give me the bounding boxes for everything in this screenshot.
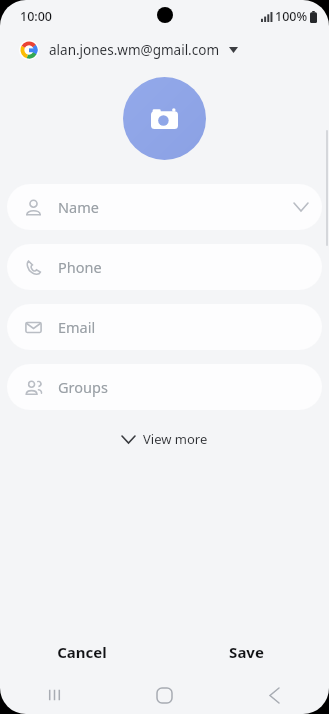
- button[interactable]: Back: [219, 676, 329, 714]
- button[interactable]: Add contact photo: [123, 77, 206, 160]
- button[interactable]: Name: [7, 184, 322, 230]
- staticText: Name: [58, 197, 294, 217]
- button[interactable]: Groups: [7, 364, 322, 410]
- button[interactable]: Email: [7, 304, 322, 350]
- button[interactable]: Home: [109, 676, 219, 714]
- staticText: Save: [229, 642, 264, 662]
- staticText: Groups: [58, 377, 308, 397]
- button[interactable]: Cancel: [0, 628, 164, 676]
- staticText: Phone: [58, 257, 308, 277]
- staticText: 10:00: [20, 8, 53, 25]
- button[interactable]: Save: [164, 628, 329, 676]
- staticText: Email: [58, 317, 308, 337]
- staticText: View more: [143, 430, 208, 448]
- staticText: Cancel: [57, 642, 107, 662]
- button[interactable]: View more: [110, 425, 220, 453]
- button[interactable]: Recents: [0, 676, 109, 714]
- button[interactable]: alan.jones.wm@gmail.com: [0, 32, 329, 68]
- button[interactable]: Phone: [7, 244, 322, 290]
- staticText: 100%: [275, 8, 308, 25]
- staticText: alan.jones.wm@gmail.com: [49, 41, 220, 59]
